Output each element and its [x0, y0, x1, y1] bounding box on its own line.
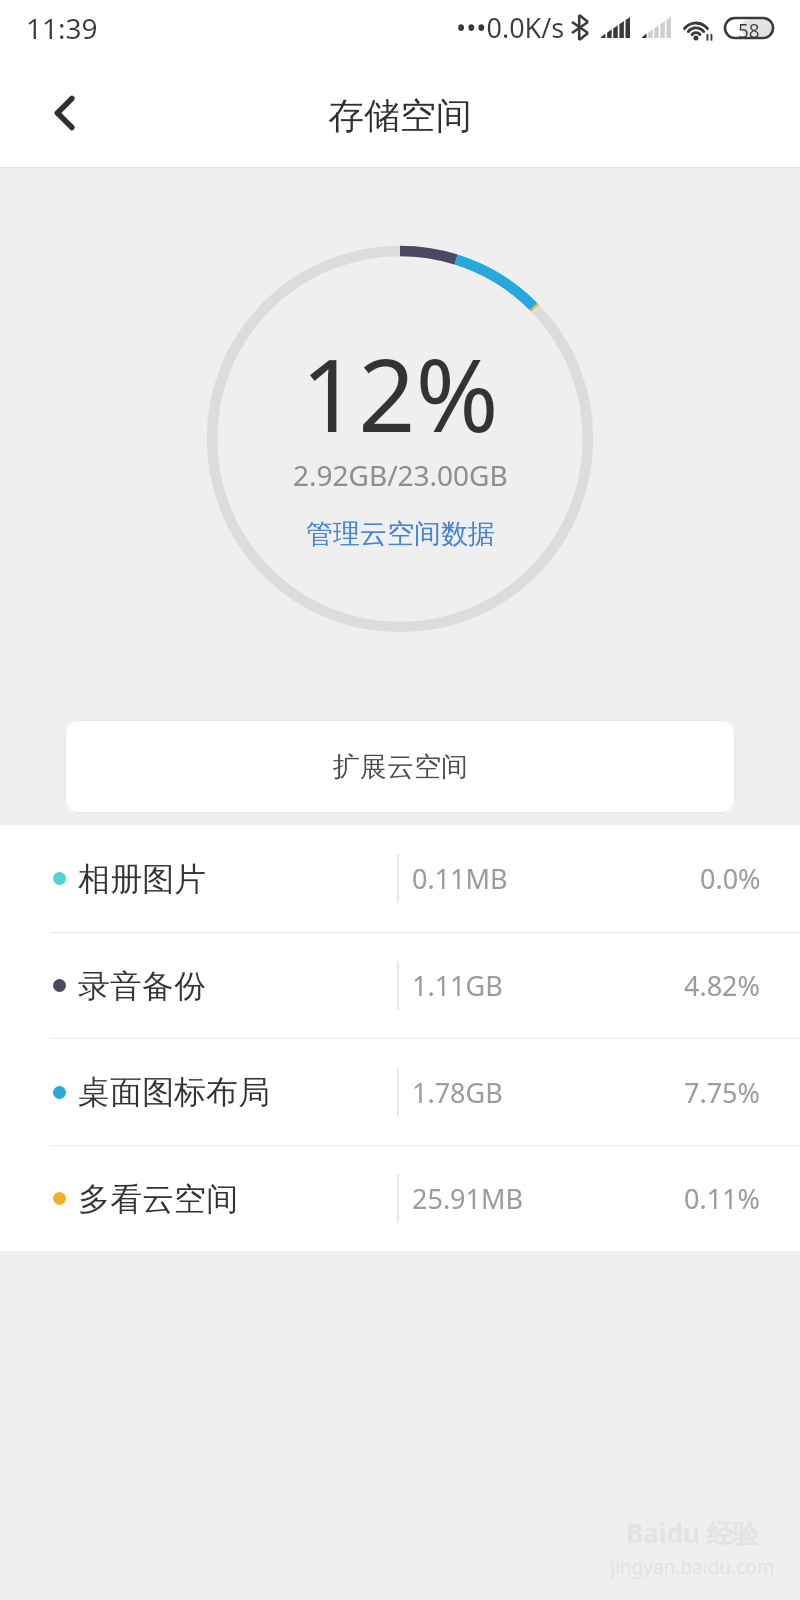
staticText: 2.92GB/23.00GB	[293, 456, 508, 494]
staticText: Baidu 经验	[626, 1515, 759, 1551]
button[interactable]: 录音备份	[0, 933, 800, 1038]
staticText: 扩展云空间	[333, 750, 468, 784]
button[interactable]: Back	[24, 69, 112, 157]
staticText: 桌面图标布局	[78, 1072, 270, 1112]
staticText: 多看云空间	[78, 1179, 238, 1219]
staticText: •••0.0K/s	[456, 9, 565, 46]
staticText: 25.91MB	[412, 1180, 524, 1217]
staticText: jingyan.baidu.com	[610, 1554, 775, 1580]
staticText: 4.82%	[684, 967, 761, 1004]
staticText: 58	[738, 18, 760, 38]
staticText: 1.78GB	[412, 1074, 503, 1111]
staticText: 0.11MB	[412, 860, 508, 897]
button[interactable]: 管理云空间数据	[296, 514, 505, 554]
staticText: 12%	[301, 325, 499, 461]
staticText: 相册图片	[78, 859, 206, 899]
staticText: 1.11GB	[412, 967, 503, 1004]
staticText: 录音备份	[78, 966, 206, 1006]
button[interactable]: 多看云空间	[0, 1146, 800, 1251]
button[interactable]: 扩展云空间	[65, 720, 735, 813]
button[interactable]: 相册图片	[0, 825, 800, 932]
staticText: 0.11%	[684, 1180, 761, 1217]
staticText: 7.75%	[684, 1074, 761, 1111]
staticText: 11:39	[26, 9, 98, 47]
staticText: 管理云空间数据	[306, 517, 495, 551]
staticText: 存储空间	[328, 93, 472, 138]
button[interactable]: 桌面图标布局	[0, 1039, 800, 1145]
staticText: 0.0%	[700, 860, 761, 897]
